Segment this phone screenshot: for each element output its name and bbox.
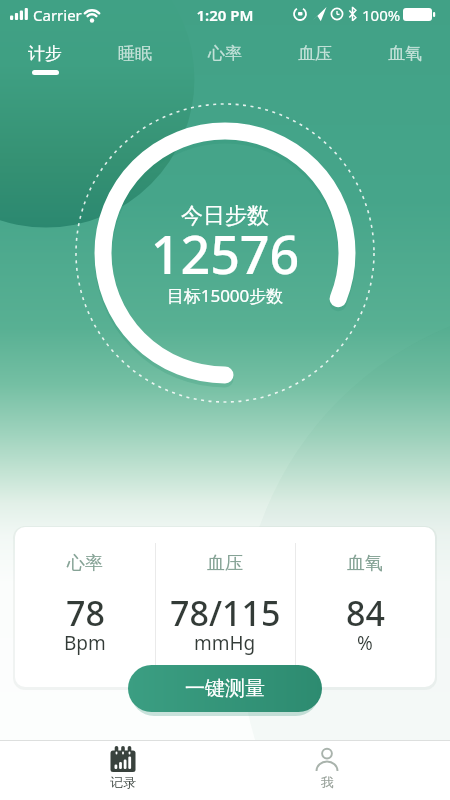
- staticText: 今日步数: [0, 202, 450, 230]
- staticText: 78/115: [170, 590, 281, 636]
- staticText: 1:20 PM: [0, 5, 450, 25]
- staticText: 84: [346, 590, 385, 636]
- staticText: 我: [321, 774, 334, 790]
- staticText: Bpm: [64, 630, 106, 656]
- staticText: mmHg: [194, 630, 256, 656]
- staticText: 心率: [208, 43, 242, 64]
- staticText: 血氧: [388, 43, 422, 64]
- staticText: Carrier: [33, 5, 82, 25]
- button[interactable]: 心率: [180, 33, 270, 79]
- button[interactable]: 记录: [98, 746, 148, 800]
- button[interactable]: 血压: [270, 33, 360, 79]
- staticText: 血压: [298, 43, 332, 64]
- staticText: 一键测量: [185, 676, 265, 701]
- button[interactable]: 一键测量: [128, 665, 322, 712]
- staticText: 12576: [0, 218, 450, 289]
- staticText: 记录: [110, 774, 136, 790]
- staticText: %: [357, 630, 373, 656]
- staticText: 心率: [67, 552, 103, 575]
- button[interactable]: 血氧: [360, 33, 450, 79]
- staticText: 血氧: [347, 552, 383, 575]
- staticText: 血压: [207, 552, 243, 575]
- staticText: 100%: [362, 5, 401, 25]
- staticText: 计步: [28, 43, 62, 64]
- button[interactable]: 心率: [15, 527, 155, 687]
- button[interactable]: 我: [302, 746, 352, 800]
- button[interactable]: 血压: [155, 527, 295, 687]
- staticText: 目标15000步数: [0, 284, 450, 307]
- button[interactable]: 血氧: [295, 527, 435, 687]
- button[interactable]: 计步: [0, 33, 90, 79]
- staticText: 78: [66, 590, 105, 636]
- staticText: 睡眠: [118, 43, 152, 64]
- button[interactable]: 睡眠: [90, 33, 180, 79]
